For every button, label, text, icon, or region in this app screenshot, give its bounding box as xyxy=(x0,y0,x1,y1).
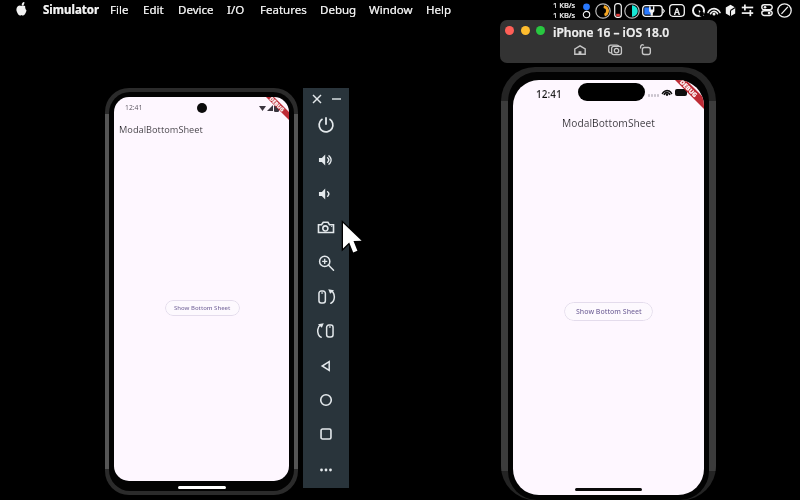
button[interactable]: Screenshot xyxy=(603,39,626,60)
staticText: Window xyxy=(369,2,413,18)
staticText: Device xyxy=(178,2,214,18)
staticText: A xyxy=(674,5,680,17)
button[interactable]: Power xyxy=(311,110,341,140)
button[interactable]: Minimize emulator xyxy=(326,89,346,109)
staticText: 1 KB/s xyxy=(553,10,576,20)
staticText: DEBUG xyxy=(268,97,286,114)
staticText: Simulator xyxy=(43,2,100,18)
button[interactable]: Minimize window xyxy=(521,26,530,35)
staticText: Edit xyxy=(143,2,164,18)
button[interactable]: Rotate right xyxy=(311,282,341,312)
staticText: DEBUG xyxy=(678,80,699,99)
staticText: I/O xyxy=(227,2,245,18)
button[interactable]: Features xyxy=(260,0,307,19)
button[interactable]: Device xyxy=(178,0,214,19)
button[interactable]: Close emulator xyxy=(307,89,327,109)
button[interactable]: Home xyxy=(568,39,591,60)
button[interactable]: File xyxy=(110,0,129,19)
button[interactable]: Simulator xyxy=(43,0,100,19)
button[interactable]: Rotate left xyxy=(311,316,341,346)
staticText: Features xyxy=(260,2,307,18)
button[interactable]: Debug xyxy=(320,0,357,19)
staticText: 12:41 xyxy=(536,87,562,101)
button[interactable]: Edit xyxy=(143,0,164,19)
button[interactable]: Show Bottom Sheet xyxy=(165,300,240,316)
staticText: Debug xyxy=(320,2,357,18)
button[interactable]: Show Bottom Sheet xyxy=(564,302,653,321)
staticText: ModalBottomSheet xyxy=(513,116,704,130)
staticText: Show Bottom Sheet xyxy=(174,304,231,312)
button[interactable]: I/O xyxy=(227,0,245,19)
button[interactable]: Take screenshot xyxy=(311,213,341,243)
staticText: iPhone 16 – iOS 18.0 xyxy=(553,24,670,40)
staticText: ModalBottomSheet xyxy=(119,123,203,136)
button[interactable]: Maximize window xyxy=(536,26,545,35)
button[interactable]: Help xyxy=(426,0,452,19)
button[interactable]: Back xyxy=(311,351,341,381)
button[interactable]: More options xyxy=(311,455,341,485)
button[interactable]: Volume down xyxy=(311,179,341,209)
button[interactable]: Zoom xyxy=(311,248,341,278)
staticText: File xyxy=(110,2,129,18)
button[interactable]: Volume up xyxy=(311,145,341,175)
button[interactable]: Close window xyxy=(505,26,514,35)
button[interactable]: Window xyxy=(369,0,413,19)
staticText: Show Bottom Sheet xyxy=(576,307,642,317)
button[interactable]: Rotate xyxy=(634,39,657,60)
staticText: 1 KB/s xyxy=(553,0,576,10)
button[interactable]: Overview xyxy=(311,419,341,449)
staticText: 12:41 xyxy=(125,103,143,112)
staticText: Help xyxy=(426,2,452,18)
button[interactable]: Home xyxy=(311,385,341,415)
